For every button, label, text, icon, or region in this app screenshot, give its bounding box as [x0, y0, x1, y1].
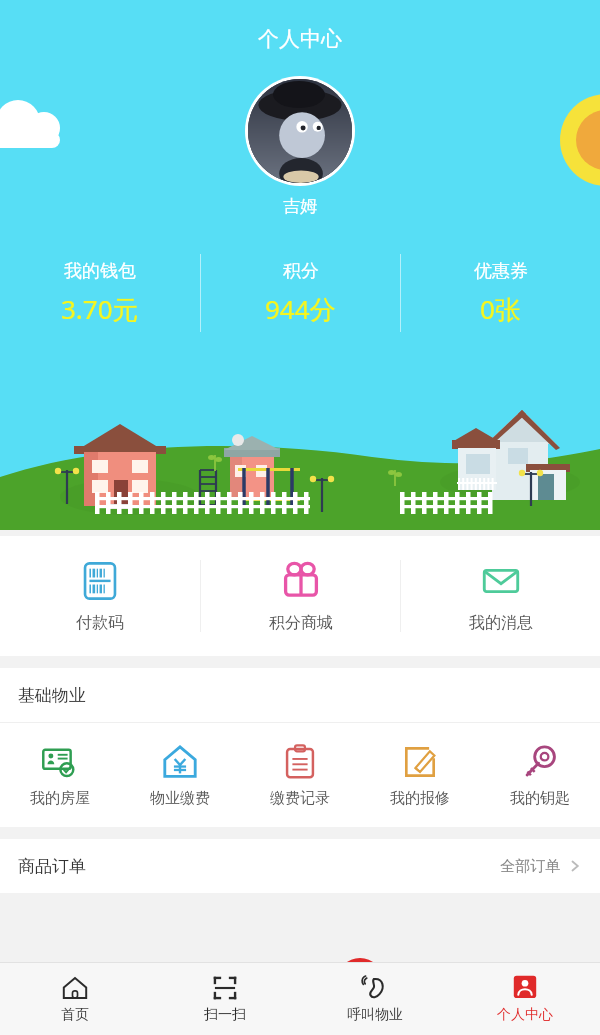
button[interactable]: 个人中心	[450, 963, 600, 1035]
staticText: 944分	[265, 291, 336, 327]
button[interactable]: 缴费记录	[240, 723, 360, 827]
staticText: 呼叫物业	[347, 1006, 403, 1024]
staticText: 全部订单	[500, 857, 560, 876]
button[interactable]: 付款码	[0, 536, 200, 656]
staticText: 我的消息	[469, 613, 533, 633]
staticText: 我的钥匙	[510, 789, 570, 808]
button[interactable]: 我的消息	[401, 536, 600, 656]
staticText: 扫一扫	[204, 1006, 246, 1024]
staticText: 物业缴费	[150, 789, 210, 808]
staticText: 个人中心	[497, 1006, 553, 1024]
staticText: 缴费记录	[270, 789, 330, 808]
staticText: 个人中心	[258, 26, 342, 52]
button[interactable]: 呼叫物业	[300, 963, 450, 1035]
staticText: 0张	[480, 291, 521, 327]
button[interactable]: Profile avatar	[245, 76, 355, 186]
staticText: 我的钱包	[64, 260, 136, 283]
button[interactable]: 首页	[0, 963, 150, 1035]
button[interactable]: 优惠券	[401, 243, 600, 343]
staticText: 积分商城	[269, 613, 333, 633]
button[interactable]: 积分	[201, 243, 400, 343]
button[interactable]: 商品订单	[0, 839, 600, 893]
staticText: 我的房屋	[30, 789, 90, 808]
button[interactable]: 物业缴费	[120, 723, 240, 827]
staticText: 基础物业	[18, 685, 86, 706]
staticText: 商品订单	[18, 856, 86, 877]
button[interactable]: 我的钱包	[0, 243, 200, 343]
button[interactable]: 我的房屋	[0, 723, 120, 827]
button[interactable]: 积分商城	[201, 536, 400, 656]
staticText: 首页	[61, 1006, 89, 1024]
button[interactable]: 我的报修	[360, 723, 480, 827]
staticText: 积分	[283, 260, 319, 283]
staticText: 优惠券	[474, 260, 528, 283]
staticText: 3.70元	[61, 291, 139, 327]
button[interactable]: 扫一扫	[150, 963, 300, 1035]
button[interactable]: 我的钥匙	[480, 723, 600, 827]
staticText: 我的报修	[390, 789, 450, 808]
staticText: 吉姆	[283, 196, 317, 217]
staticText: 付款码	[76, 613, 124, 633]
